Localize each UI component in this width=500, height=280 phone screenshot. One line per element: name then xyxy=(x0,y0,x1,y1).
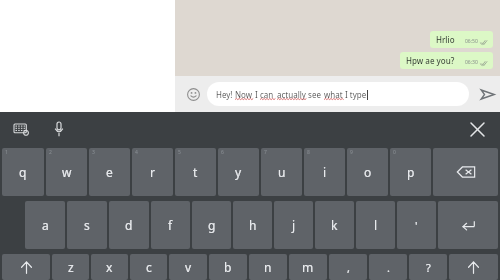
staticText: j xyxy=(292,217,296,233)
button[interactable]: w xyxy=(46,148,87,196)
button[interactable]: s xyxy=(67,201,107,249)
staticText xyxy=(274,89,277,100)
staticText: r xyxy=(150,164,155,180)
button[interactable]: v xyxy=(169,254,207,280)
staticText: 7 xyxy=(264,149,267,156)
staticText: I type xyxy=(343,89,367,100)
button[interactable]: l xyxy=(356,201,395,249)
staticText: 6 xyxy=(221,149,224,156)
staticText: d xyxy=(125,217,133,233)
staticText: x xyxy=(106,259,113,275)
staticText: 4 xyxy=(135,149,138,156)
button[interactable]: r xyxy=(132,148,173,196)
staticText: c xyxy=(146,259,152,275)
staticText: 06:30 xyxy=(465,59,478,66)
button[interactable]: Voice input xyxy=(46,116,72,142)
staticText: t xyxy=(193,164,198,180)
button[interactable]: d xyxy=(109,201,149,249)
staticText: 1 xyxy=(5,149,8,156)
staticText: 5 xyxy=(178,149,181,156)
staticText: a xyxy=(42,217,49,233)
button[interactable]: m xyxy=(289,254,327,280)
staticText: 06:50 xyxy=(465,38,478,45)
staticText: 3 xyxy=(92,149,95,156)
staticText: e xyxy=(106,164,113,180)
staticText: p xyxy=(407,164,415,180)
staticText: what xyxy=(324,89,343,100)
staticText: Hpw ae you? xyxy=(406,55,455,66)
staticText: g xyxy=(208,217,216,233)
button[interactable]: Close keyboard xyxy=(464,116,490,142)
button[interactable]: Keyboard settings xyxy=(8,116,34,142)
button[interactable]: h xyxy=(233,201,272,249)
staticText: , xyxy=(347,260,350,275)
staticText: 8 xyxy=(307,149,310,156)
staticText: 9 xyxy=(350,149,353,156)
staticText: can xyxy=(260,89,274,100)
button[interactable]: Hrlio xyxy=(430,31,493,48)
button[interactable]: t xyxy=(175,148,216,196)
button[interactable]: n xyxy=(249,254,287,280)
button[interactable]: k xyxy=(315,201,354,249)
button[interactable]: x xyxy=(91,254,128,280)
button[interactable]: i xyxy=(304,148,345,196)
button[interactable]: c xyxy=(130,254,167,280)
button[interactable]: Backspace xyxy=(433,148,498,196)
staticText: y xyxy=(235,164,242,180)
staticText: actually xyxy=(277,89,306,100)
button[interactable]: u xyxy=(261,148,302,196)
staticText: u xyxy=(278,164,286,180)
button[interactable]: Emoji xyxy=(182,83,204,105)
staticText: q xyxy=(19,164,27,180)
button[interactable]: Shift xyxy=(2,254,50,280)
button[interactable]: a xyxy=(25,201,65,249)
staticText: l xyxy=(374,217,378,233)
staticText: 0 xyxy=(393,149,396,156)
button[interactable]: Enter xyxy=(438,201,498,249)
staticText: see xyxy=(306,89,324,100)
staticText: b xyxy=(224,259,232,275)
staticText: Hrlio xyxy=(436,34,455,45)
button[interactable]: o xyxy=(347,148,388,196)
button[interactable]: Hey! xyxy=(207,82,469,106)
staticText: k xyxy=(331,217,338,233)
button[interactable]: Hpw ae you? xyxy=(400,52,493,69)
staticText: n xyxy=(264,259,272,275)
staticText: ? xyxy=(426,260,431,275)
staticText: v xyxy=(185,259,192,275)
button[interactable]: f xyxy=(151,201,190,249)
staticText: m xyxy=(302,259,314,275)
button[interactable]: b xyxy=(209,254,247,280)
button[interactable]: . xyxy=(369,254,407,280)
button[interactable]: Shift xyxy=(449,254,498,280)
staticText: I xyxy=(253,89,260,100)
staticText: w xyxy=(62,164,72,180)
staticText: Now xyxy=(235,89,253,100)
staticText: Hey! xyxy=(216,89,235,100)
staticText: ' xyxy=(415,218,418,233)
button[interactable]: e xyxy=(89,148,130,196)
button[interactable]: g xyxy=(192,201,231,249)
button[interactable]: Send xyxy=(474,81,500,107)
staticText: s xyxy=(84,217,90,233)
button[interactable]: q xyxy=(2,148,44,196)
button[interactable]: , xyxy=(329,254,367,280)
button[interactable]: z xyxy=(52,254,89,280)
button[interactable]: y xyxy=(218,148,259,196)
button[interactable]: ? xyxy=(409,254,447,280)
staticText: o xyxy=(364,164,372,180)
staticText: f xyxy=(168,217,173,233)
staticText: h xyxy=(249,217,257,233)
staticText: 2 xyxy=(49,149,52,156)
button[interactable]: p xyxy=(390,148,431,196)
staticText: z xyxy=(68,259,74,275)
staticText: i xyxy=(323,164,327,180)
staticText: . xyxy=(387,260,390,275)
button[interactable]: j xyxy=(274,201,313,249)
button[interactable]: ' xyxy=(397,201,436,249)
